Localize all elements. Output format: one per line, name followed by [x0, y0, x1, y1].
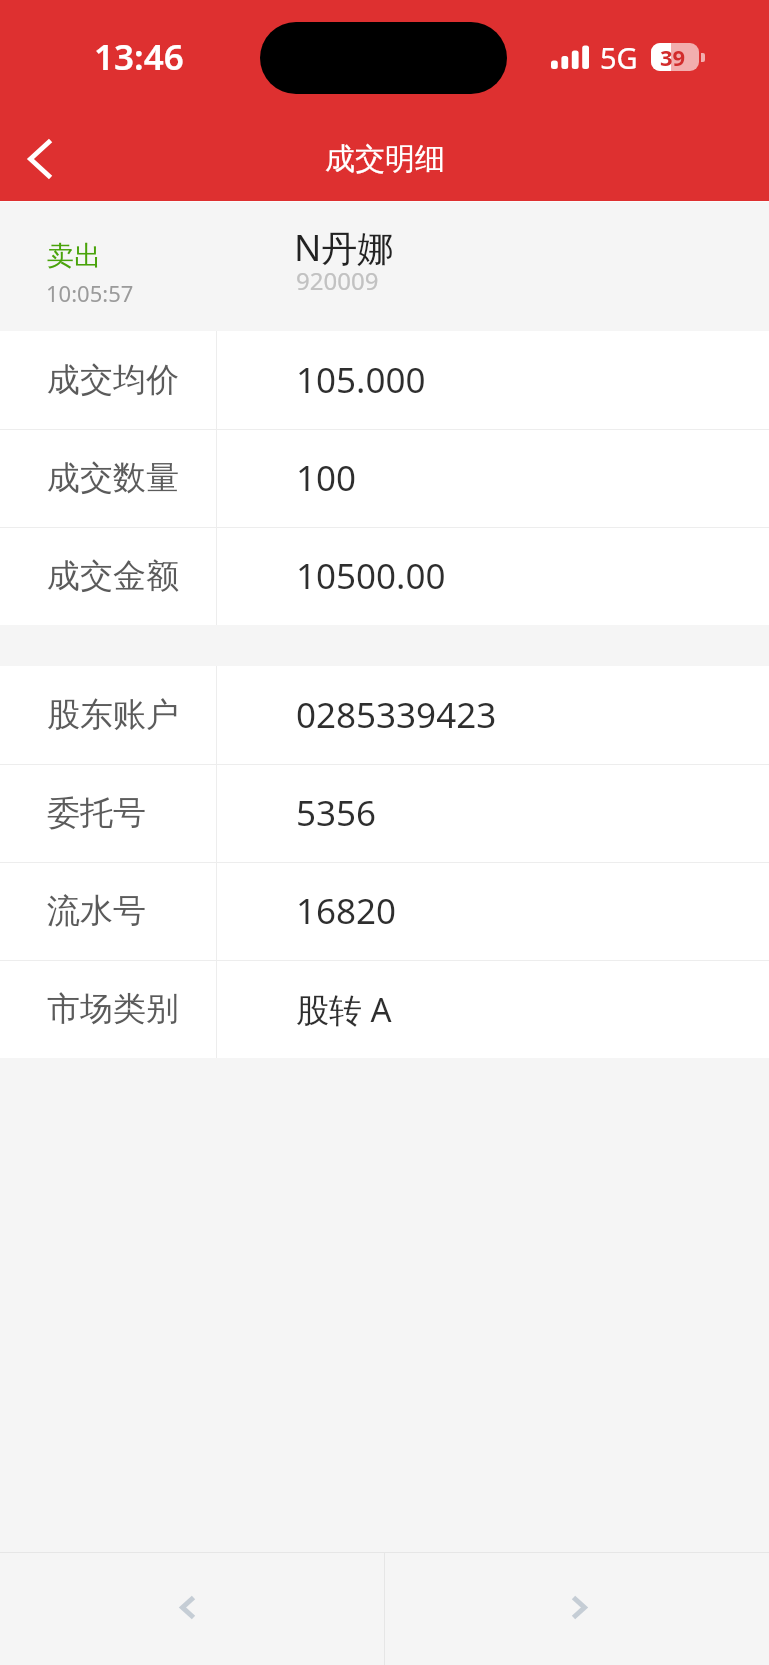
- staticText: 成交金额: [47, 555, 179, 597]
- staticText: 105.000: [296, 356, 426, 404]
- staticText: 0285339423: [296, 691, 497, 739]
- button[interactable]: 市场类别: [0, 960, 769, 1058]
- button[interactable]: Back: [1, 119, 79, 197]
- staticText: 委托号: [47, 792, 146, 834]
- staticText: 成交数量: [47, 457, 179, 499]
- staticText: 流水号: [47, 890, 146, 932]
- staticText: 100: [296, 454, 357, 502]
- button[interactable]: 委托号: [0, 764, 769, 862]
- staticText: 5356: [296, 789, 377, 837]
- staticText: 920009: [296, 264, 379, 297]
- button[interactable]: 成交金额: [0, 527, 769, 625]
- staticText: 成交明细: [325, 140, 445, 178]
- staticText: 16820: [296, 887, 397, 935]
- staticText: 股东账户: [47, 694, 179, 736]
- staticText: 10:05:57: [46, 278, 134, 308]
- staticText: 13:46: [94, 33, 184, 81]
- button[interactable]: 股东账户: [0, 666, 769, 764]
- button[interactable]: 成交数量: [0, 429, 769, 527]
- staticText: 股转 A: [296, 987, 392, 1032]
- staticText: 39: [660, 43, 686, 70]
- staticText: 5G: [600, 38, 638, 77]
- staticText: 卖出: [47, 239, 101, 273]
- button[interactable]: Next record: [385, 1552, 769, 1665]
- button[interactable]: 成交均价: [0, 331, 769, 429]
- staticText: 成交均价: [47, 359, 179, 401]
- staticText: N丹娜: [294, 223, 394, 272]
- button[interactable]: 流水号: [0, 862, 769, 960]
- staticText: 10500.00: [296, 552, 446, 600]
- staticText: 市场类别: [47, 988, 179, 1030]
- button[interactable]: Previous record: [0, 1552, 384, 1665]
